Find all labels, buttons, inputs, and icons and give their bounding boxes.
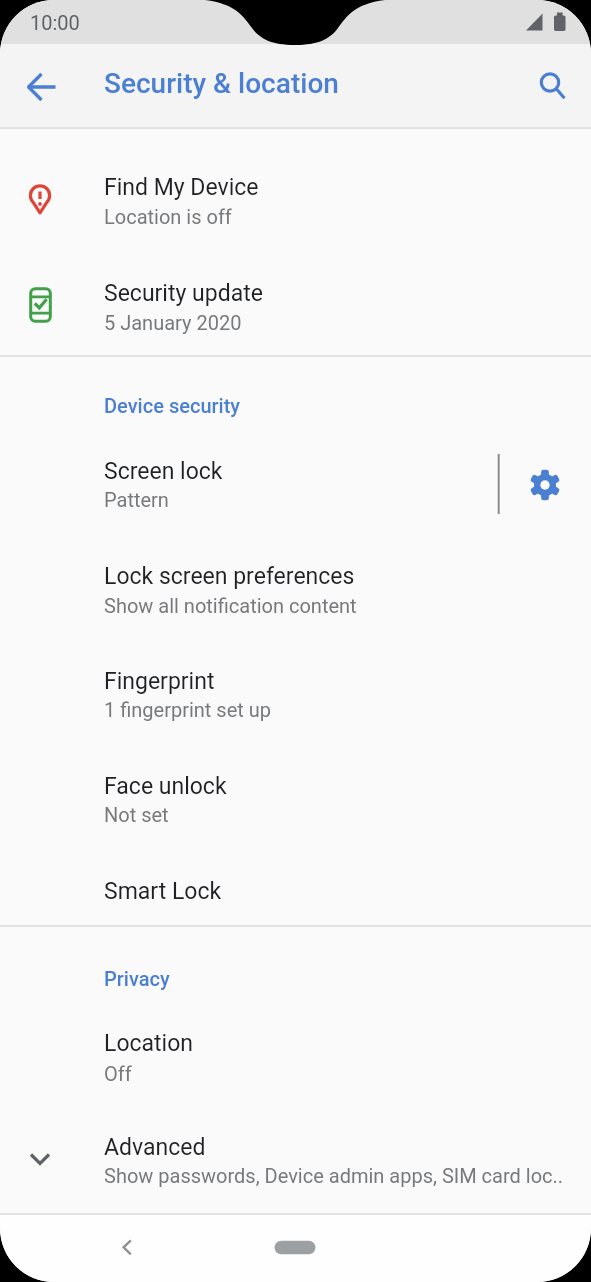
staticText: Privacy <box>104 967 170 990</box>
staticText: Fingerprint <box>104 668 215 695</box>
staticText: Show all notification content <box>104 594 357 617</box>
staticText: Smart Lock <box>104 878 222 905</box>
staticText: Find My Device <box>104 174 259 201</box>
staticText: Screen lock <box>104 458 223 485</box>
staticText: Security update <box>104 280 263 307</box>
staticText: Location <box>104 1030 193 1057</box>
staticText: 10:00 <box>30 11 80 34</box>
staticText: Location is off <box>104 205 232 228</box>
staticText: Off <box>104 1062 132 1085</box>
staticText: Face unlock <box>104 773 227 800</box>
staticText: Pattern <box>104 488 169 511</box>
staticText: 5 January 2020 <box>104 311 242 334</box>
staticText: Not set <box>104 803 169 826</box>
staticText: Show passwords, Device admin apps, SIM c… <box>104 1164 564 1187</box>
staticText: Lock screen preferences <box>104 563 355 590</box>
staticText: Security & location <box>104 67 339 100</box>
staticText: Device security <box>104 394 241 417</box>
staticText: Advanced <box>104 1134 206 1161</box>
staticText: 1 fingerprint set up <box>104 698 272 721</box>
